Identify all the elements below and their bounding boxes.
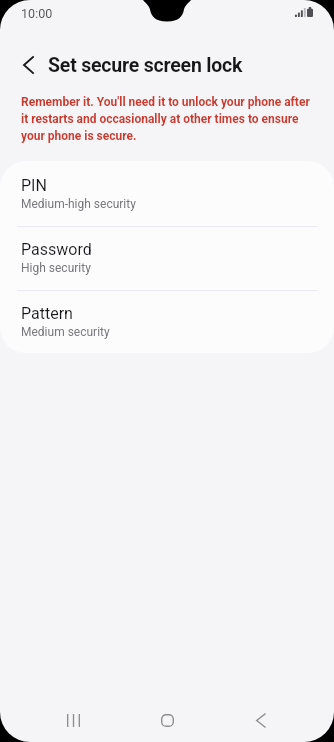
button[interactable]: Pattern <box>0 289 334 353</box>
button[interactable]: Back <box>214 691 306 742</box>
button[interactable]: Home <box>121 691 213 742</box>
staticText: Pattern <box>21 304 73 323</box>
staticText: Password <box>21 240 92 259</box>
button[interactable]: Recent apps <box>27 691 119 742</box>
staticText: PIN <box>21 176 47 195</box>
button[interactable]: PIN <box>0 161 334 225</box>
staticText: Set secure screen lock <box>48 55 243 77</box>
button[interactable]: Password <box>0 225 334 289</box>
staticText: 10:00 <box>21 6 53 21</box>
button[interactable]: Navigate up <box>9 46 47 84</box>
staticText: High security <box>21 261 91 275</box>
staticText: Remember it. You'll need it to unlock yo… <box>21 92 315 143</box>
staticText: Medium-high security <box>21 197 136 211</box>
staticText: Medium security <box>21 325 110 339</box>
